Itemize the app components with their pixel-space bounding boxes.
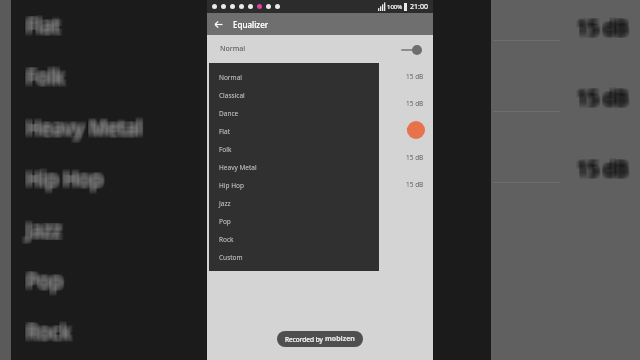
staticText: Rock [24, 316, 69, 343]
staticText: Jazz [25, 218, 61, 245]
button[interactable]: Enable equalizer [400, 43, 424, 56]
button[interactable]: Custom [209, 248, 379, 266]
staticText: Pop [23, 268, 60, 295]
staticText: Rock [26, 319, 71, 346]
staticText: Folk [23, 63, 62, 90]
staticText: Pop [24, 266, 61, 293]
button[interactable]: Normal [207, 35, 433, 63]
staticText: Folk [25, 62, 64, 89]
staticText: 15 dB [576, 15, 627, 41]
button[interactable]: Pop [209, 212, 379, 230]
staticText: Rock [23, 318, 68, 345]
button[interactable]: Folk [209, 140, 379, 158]
staticText: Heavy Metal [219, 163, 257, 172]
staticText: 15 dB [575, 18, 626, 44]
staticText: 15 dB [578, 18, 629, 44]
staticText: 15 dB [578, 86, 629, 112]
button[interactable]: Hip Hop [209, 176, 379, 194]
staticText: Flat [24, 14, 58, 41]
staticText: Pop [28, 264, 65, 291]
staticText: Hip Hop [25, 166, 102, 193]
staticText: Folk [24, 66, 63, 93]
staticText: Heavy Metal [23, 117, 139, 144]
staticText: Folk [24, 62, 63, 89]
staticText: 15 dB [575, 12, 626, 38]
staticText: Hip Hop [26, 167, 103, 194]
staticText: Flat [23, 14, 57, 41]
staticText: 15 dB [575, 86, 626, 112]
staticText: 15 dB [580, 16, 631, 42]
staticText: 15 dB [577, 14, 628, 40]
staticText: Rock [27, 320, 72, 347]
button[interactable]: Rock [209, 230, 379, 248]
staticText: 15 dB [579, 158, 630, 184]
staticText: Heavy Metal [23, 111, 139, 138]
staticText: Heavy Metal [28, 116, 144, 143]
staticText: 15 dB [406, 153, 424, 162]
button[interactable]: Normal [209, 68, 379, 86]
staticText: Heavy Metal [29, 117, 145, 144]
staticText: Folk [24, 65, 63, 92]
staticText: Pop [28, 265, 65, 292]
button[interactable]: Dance [209, 104, 379, 122]
staticText: 15 dB [580, 157, 631, 183]
staticText: Folk [28, 61, 67, 88]
staticText: Heavy Metal [24, 113, 140, 140]
staticText: Rock [25, 320, 70, 347]
staticText: 15 dB [575, 153, 626, 179]
button[interactable]: Heavy Metal [209, 158, 379, 176]
staticText: Folk [26, 60, 65, 87]
staticText: Jazz [24, 217, 60, 244]
staticText: 15 dB [579, 12, 630, 38]
staticText: Hip Hop [27, 166, 104, 193]
button[interactable]: Back [207, 13, 229, 35]
staticText: Flat [25, 15, 59, 42]
button[interactable]: Classical [209, 86, 379, 104]
staticText: Jazz [28, 214, 64, 241]
staticText: Flat [26, 10, 60, 37]
staticText: Hip Hop [29, 164, 106, 191]
staticText: Folk [28, 65, 67, 92]
button[interactable]: Flat [209, 122, 379, 140]
staticText: Rock [27, 315, 72, 342]
staticText: 15 dB [574, 83, 625, 109]
staticText: 15 dB [575, 16, 626, 42]
staticText: Jazz [29, 215, 65, 242]
staticText: Pop [24, 267, 61, 294]
staticText: Custom [219, 253, 243, 262]
staticText: Jazz [26, 219, 62, 246]
staticText: 15 dB [579, 16, 630, 42]
staticText: Jazz [24, 214, 60, 241]
staticText: Heavy Metal [24, 112, 140, 139]
staticText: Jazz [27, 213, 63, 240]
staticText: Pop [23, 267, 60, 294]
staticText: Hip Hop [23, 168, 100, 195]
button[interactable]: Jazz [209, 194, 379, 212]
staticText: 15 dB [577, 17, 628, 43]
staticText: 15 dB [576, 17, 627, 43]
staticText: 15 dB [574, 87, 625, 113]
staticText: Folk [24, 61, 63, 88]
staticText: 15 dB [578, 17, 629, 43]
staticText: Flat [27, 9, 61, 36]
staticText: 15 dB [576, 153, 627, 179]
staticText: Heavy Metal [29, 113, 145, 140]
staticText: Rock [29, 321, 74, 348]
staticText: Heavy Metal [26, 115, 142, 142]
staticText: Heavy Metal [26, 116, 142, 143]
staticText: Jazz [28, 217, 64, 244]
staticText: 15 dB [577, 85, 628, 111]
staticText: 15 dB [580, 13, 631, 39]
staticText: 15 dB [406, 99, 424, 108]
staticText: Rock [26, 316, 71, 343]
staticText: 15 dB [577, 13, 628, 39]
staticText: Jazz [24, 219, 60, 246]
staticText: Rock [28, 317, 73, 344]
staticText: Hip Hop [28, 164, 105, 191]
staticText: Rock [27, 319, 72, 346]
staticText: Flat [23, 13, 57, 40]
staticText: Flat [29, 9, 63, 36]
staticText: 15 dB [578, 154, 629, 180]
staticText: 15 dB [575, 158, 626, 184]
staticText: Pop [28, 270, 65, 297]
